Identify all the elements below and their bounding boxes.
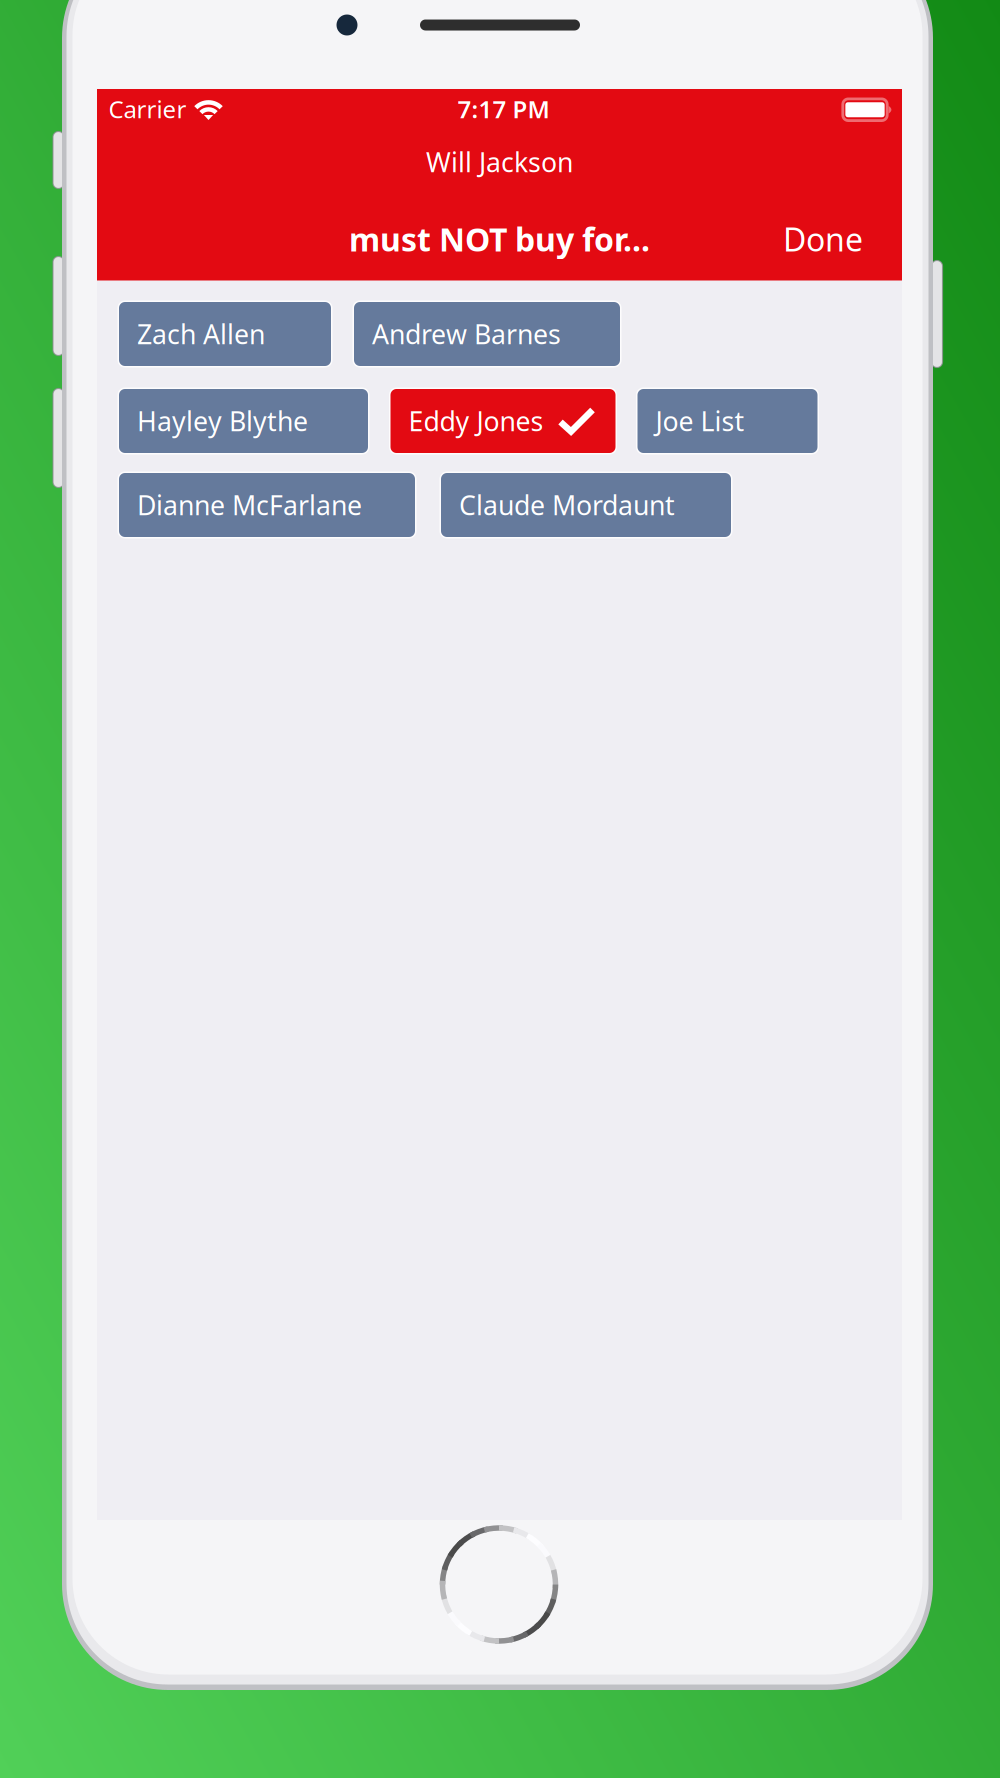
button[interactable]: Zach Allen bbox=[119, 302, 331, 366]
button[interactable]: Done bbox=[768, 209, 878, 269]
staticText: Will Jackson bbox=[426, 144, 573, 180]
button[interactable]: Claude Mordaunt bbox=[441, 473, 731, 537]
staticText: Dianne McFarlane bbox=[137, 487, 362, 523]
staticText: Joe List bbox=[655, 403, 744, 439]
button[interactable]: Joe List bbox=[637, 389, 817, 453]
staticText: Hayley Blythe bbox=[137, 403, 308, 439]
button[interactable]: Andrew Barnes bbox=[354, 302, 620, 366]
staticText: Carrier bbox=[108, 93, 186, 125]
staticText: Zach Allen bbox=[137, 316, 265, 352]
staticText: 7:17 PM bbox=[457, 93, 549, 125]
button[interactable]: Hayley Blythe bbox=[119, 389, 368, 453]
staticText: Eddy Jones bbox=[408, 403, 543, 439]
staticText: Done bbox=[783, 218, 863, 260]
staticText: Andrew Barnes bbox=[372, 316, 561, 352]
button[interactable]: Eddy Jones bbox=[390, 389, 615, 453]
staticText: Claude Mordaunt bbox=[459, 487, 675, 523]
button[interactable]: Dianne McFarlane bbox=[119, 473, 415, 537]
staticText: must NOT buy for... bbox=[349, 218, 650, 260]
